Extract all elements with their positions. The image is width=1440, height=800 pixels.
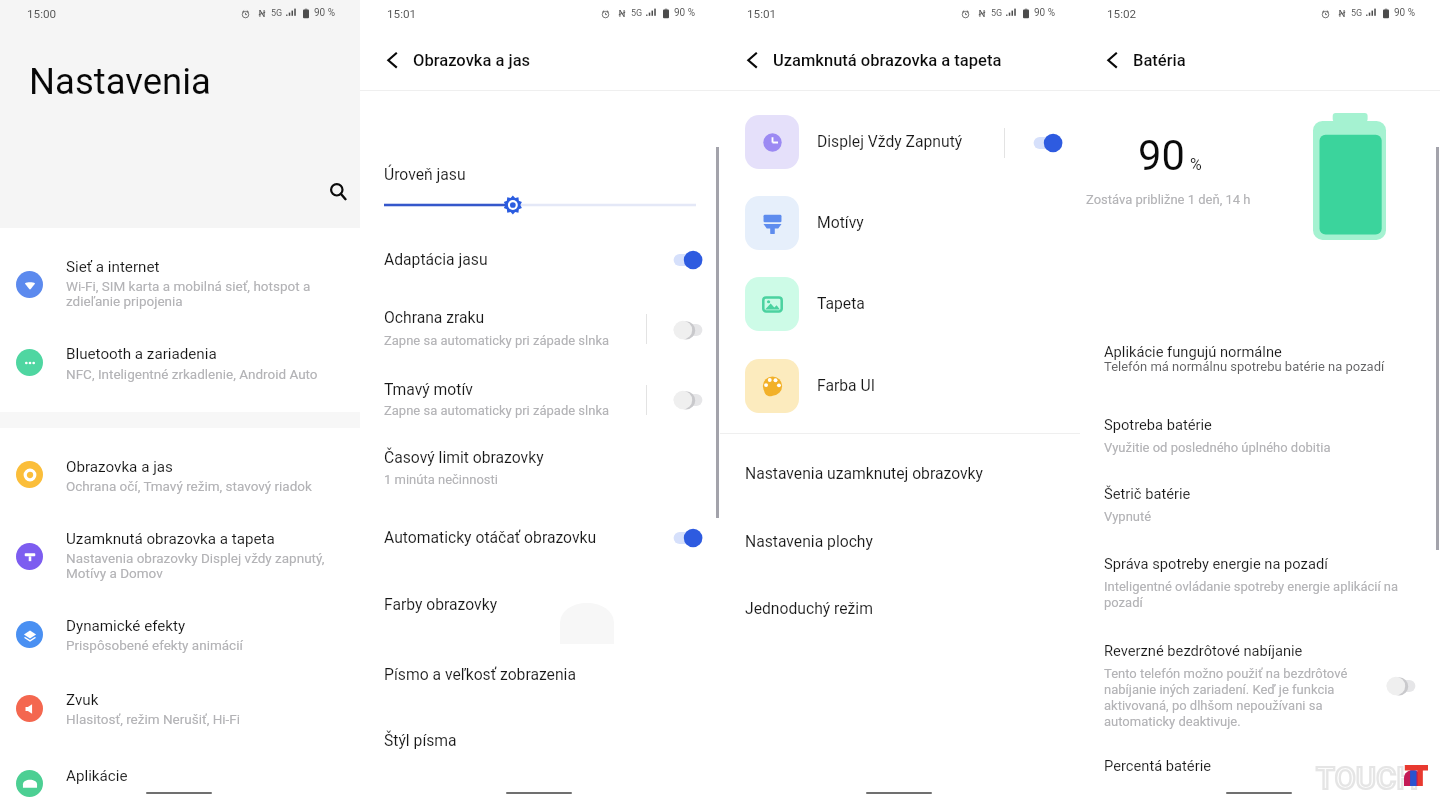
staticText: Nastavenia (29, 60, 211, 103)
staticText: Úroveň jasu (384, 165, 466, 183)
staticText: Správa spotreby energie na pozadí (1104, 555, 1328, 572)
staticText: Bluetooth a zariadenia (66, 345, 217, 363)
staticText: 90 % (674, 7, 696, 19)
button[interactable] (360, 721, 720, 767)
staticText: 5G (1351, 8, 1363, 19)
button[interactable] (0, 753, 360, 800)
button[interactable] (0, 678, 360, 738)
button[interactable] (1080, 750, 1440, 790)
button[interactable]: Brightness (384, 195, 696, 215)
button[interactable]: On (673, 250, 703, 270)
staticText: 15:01 (387, 7, 417, 21)
staticText: Prispôsobené efekty animácií (66, 637, 243, 653)
staticText: Inteligentné ovládanie spotreby energie … (1104, 579, 1399, 610)
button[interactable]: Back (1096, 43, 1132, 79)
button[interactable] (720, 518, 1080, 566)
staticText: 5G (991, 8, 1003, 19)
staticText: Obrazovka a jas (413, 51, 531, 70)
staticText: Dynamické efekty (66, 617, 186, 635)
staticText: Jednoduchý režim (745, 599, 873, 617)
button[interactable] (360, 516, 720, 562)
button[interactable] (360, 440, 720, 496)
staticText: TOUCH (1316, 760, 1419, 796)
button[interactable] (0, 333, 360, 393)
staticText: 90 % (314, 7, 336, 19)
button[interactable] (1080, 408, 1440, 450)
staticText: Spotreba batérie (1104, 416, 1212, 433)
button[interactable] (0, 254, 360, 314)
staticText: Uzamknutá obrazovka a tapeta (773, 51, 1002, 70)
button[interactable] (360, 300, 720, 356)
staticText: 15:01 (747, 7, 777, 21)
staticText: Telefón má normálnu spotrebu batérie na … (1104, 359, 1385, 374)
staticText: Zostáva približne 1 deň, 14 h (1086, 192, 1251, 207)
button[interactable]: Search (320, 174, 352, 206)
button[interactable] (0, 604, 360, 664)
staticText: 90 % (1034, 7, 1056, 19)
staticText: Tento telefón možno použiť na bezdrôtové… (1104, 666, 1348, 729)
button[interactable] (720, 586, 1080, 634)
staticText: Nastavenia plochy (745, 532, 873, 550)
button[interactable] (1080, 336, 1440, 378)
button[interactable] (0, 526, 360, 586)
staticText: Zapne sa automaticky pri západe slnka (384, 403, 610, 418)
staticText: 15:00 (27, 7, 57, 21)
staticText: Časový limit obrazovky (384, 448, 544, 466)
staticText: Tmavý motív (384, 380, 473, 398)
staticText: Wi-Fi, SIM karta a mobilná sieť, hotspot… (66, 278, 311, 310)
button[interactable] (0, 444, 360, 504)
button[interactable]: Back (376, 43, 412, 79)
staticText: Uzamknutá obrazovka a tapeta (66, 530, 275, 548)
staticText: Sieť a internet (66, 258, 160, 276)
staticText: Vypnuté (1104, 509, 1152, 524)
button[interactable] (360, 585, 720, 631)
staticText: 1 minúta nečinnosti (384, 472, 498, 487)
staticText: 5G (271, 8, 283, 19)
staticText: Tapeta (817, 294, 865, 312)
staticText: Nastavenia uzamknutej obrazovky (745, 464, 983, 482)
button[interactable] (720, 346, 1080, 426)
staticText: Hlasitosť, režim Nerušiť, Hi-Fi (66, 711, 241, 727)
staticText: Šetrič batérie (1104, 485, 1191, 502)
staticText: Štýl písma (384, 731, 457, 749)
button[interactable] (1080, 547, 1440, 605)
button[interactable] (720, 265, 1080, 345)
button[interactable] (360, 370, 720, 426)
button[interactable] (360, 238, 720, 284)
button[interactable]: Off (1386, 676, 1416, 696)
button[interactable]: On (673, 528, 703, 548)
staticText: Motívy (817, 213, 864, 231)
staticText: 90 % (1394, 7, 1416, 19)
staticText: Farba UI (817, 376, 875, 394)
staticText: Aplikácie fungujú normálne (1104, 343, 1282, 360)
button[interactable] (720, 103, 1080, 183)
button[interactable] (720, 450, 1080, 498)
staticText: Využitie od posledného úplného dobitia (1104, 440, 1331, 455)
staticText: Percentá batérie (1104, 757, 1211, 774)
button[interactable] (720, 184, 1080, 264)
staticText: Zapne sa automaticky pri západe slnka (384, 333, 610, 348)
staticText: Displej Vždy Zapnutý (817, 132, 963, 150)
staticText: Ochrana zraku (384, 308, 485, 326)
staticText: 5G (631, 8, 643, 19)
button[interactable]: Back (736, 43, 772, 79)
staticText: NFC, Inteligentné zrkadlenie, Android Au… (66, 366, 318, 382)
button[interactable] (1080, 477, 1440, 519)
button[interactable] (1080, 634, 1440, 724)
staticText: Batéria (1133, 51, 1186, 70)
staticText: TOUCH (1316, 760, 1419, 796)
staticText: Zvuk (66, 691, 99, 709)
staticText: 15:02 (1107, 7, 1137, 21)
staticText: Ochrana očí, Tmavý režim, stavový riadok (66, 478, 312, 494)
button[interactable]: Off (673, 320, 703, 340)
staticText: Aplikácie (66, 767, 128, 785)
staticText: Nastavenia obrazovky Displej vždy zapnut… (66, 550, 325, 582)
staticText: Automaticky otáčať obrazovku (384, 528, 597, 546)
staticText: % (1190, 155, 1202, 174)
button[interactable] (360, 653, 720, 699)
staticText: Obrazovka a jas (66, 458, 173, 476)
staticText: 90 (1138, 131, 1185, 180)
staticText: Adaptácia jasu (384, 250, 488, 268)
button[interactable]: On (1033, 133, 1063, 153)
button[interactable]: Off (673, 390, 703, 410)
